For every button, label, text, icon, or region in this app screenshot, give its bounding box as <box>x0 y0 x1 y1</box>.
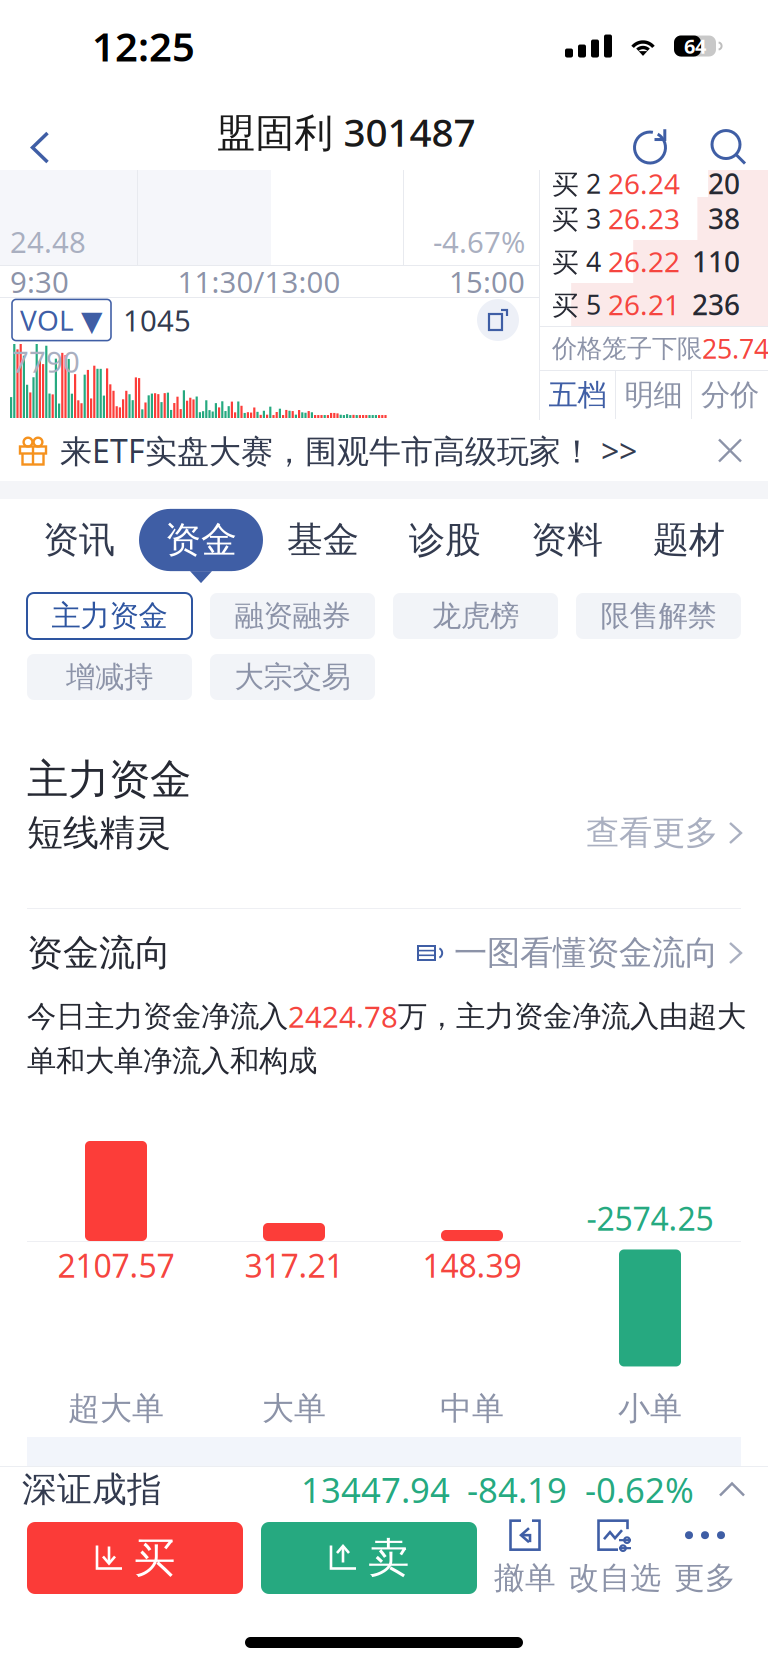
staticText: 26.24 <box>608 165 680 202</box>
staticText: 卖 <box>368 1533 409 1583</box>
staticText: 主力资金 <box>27 754 191 805</box>
staticText: -4.67% <box>433 222 525 261</box>
staticText: -0.62% <box>585 1466 694 1512</box>
staticText: 分价 <box>701 377 759 413</box>
button[interactable]: 限售解禁 <box>576 593 741 639</box>
staticText: 24.48 <box>10 222 86 261</box>
staticText: 撤单 <box>494 1559 556 1597</box>
staticText: 7790 <box>12 342 80 381</box>
staticText: 26.21 <box>608 286 680 323</box>
staticText: 深证成指 <box>22 1468 162 1511</box>
button[interactable]: 题材 <box>628 509 750 583</box>
staticText: 11:30/13:00 <box>177 262 340 301</box>
staticText: 净流入(万) <box>171 1462 319 1505</box>
staticText: 一图看懂资金流向 <box>454 932 718 973</box>
button[interactable]: 增减持 <box>27 654 192 700</box>
staticText: 64 <box>684 33 706 59</box>
button[interactable]: 资金流向 <box>0 909 768 997</box>
staticText: 25.74 <box>702 331 768 366</box>
staticText: 13447.94 <box>301 1466 450 1512</box>
button[interactable]: 大宗交易 <box>210 654 375 700</box>
staticText: 317.21 <box>244 1244 343 1286</box>
button[interactable]: Back <box>0 108 80 186</box>
staticText: 买 <box>134 1533 175 1583</box>
button[interactable]: 主力资金 <box>27 593 192 639</box>
button[interactable]: 资料 <box>506 509 628 583</box>
staticText: 超大单 <box>68 1389 164 1428</box>
staticText: 2107.57 <box>57 1244 174 1286</box>
staticText: 26.27 +0.59 +2.30% <box>205 162 486 203</box>
button[interactable]: 短线精灵 <box>0 805 768 861</box>
staticText: 中单 <box>440 1389 504 1428</box>
staticText: 资料 <box>531 518 603 562</box>
staticText: 110 <box>692 243 740 280</box>
staticText: 26.22 <box>608 243 680 280</box>
staticText: 26.23 <box>608 200 680 237</box>
staticText: 20 <box>708 165 740 202</box>
staticText: 大宗交易 <box>234 659 350 695</box>
staticText: 主力资金 <box>51 598 167 634</box>
staticText: 限售解禁 <box>600 598 716 634</box>
button[interactable]: 诊股 <box>384 509 506 583</box>
staticText: 价格笼子下限 <box>552 333 702 364</box>
staticText: 短线精灵 <box>27 811 171 855</box>
staticText: 大单 <box>262 1389 326 1428</box>
staticText: 基金 <box>287 518 359 562</box>
button[interactable]: 分价 <box>692 371 768 419</box>
staticText: 2424.78 <box>288 997 398 1036</box>
button[interactable]: 资讯 <box>18 509 140 583</box>
button[interactable]: Search <box>690 108 768 186</box>
staticText: 增减持 <box>66 659 153 695</box>
button[interactable]: 撤单 <box>480 1516 570 1600</box>
staticText: 改自选 <box>568 1559 661 1597</box>
staticText: 小单 <box>618 1389 682 1428</box>
staticText: 五档 <box>548 377 606 413</box>
staticText: 资金流向 <box>27 931 171 975</box>
staticText: 万，主力资金净流入由超大 <box>398 998 746 1034</box>
staticText: 龙虎榜 <box>432 598 519 634</box>
button[interactable]: 资金 <box>140 509 262 583</box>
button[interactable]: 五档 <box>540 371 615 419</box>
staticText: 盟固利 301487 <box>216 106 475 157</box>
staticText: 今日主力资金净流入 <box>27 998 288 1034</box>
staticText: 买 5 <box>552 287 601 322</box>
button[interactable]: 明细 <box>616 371 691 419</box>
staticText: 236 <box>692 286 740 323</box>
staticText: -84.19 <box>467 1466 567 1512</box>
button[interactable]: Refresh <box>612 108 690 186</box>
button[interactable]: 更多 <box>660 1516 750 1600</box>
staticText: 流出(万) <box>474 1462 590 1505</box>
staticText: 明细 <box>624 377 682 413</box>
staticText: 题材 <box>653 518 725 562</box>
staticText: 148.39 <box>422 1244 521 1286</box>
button[interactable]: 基金 <box>262 509 384 583</box>
button[interactable]: 龙虎榜 <box>393 593 558 639</box>
staticText: 12:25 <box>92 19 195 72</box>
staticText: -2574.25 <box>586 1197 713 1239</box>
staticText: 查看更多 <box>586 812 718 853</box>
staticText: 1045 <box>123 300 191 339</box>
staticText: 流入(万) <box>331 1462 447 1505</box>
button[interactable]: 融资融券 <box>210 593 375 639</box>
staticText: 来ETF实盘大赛，围观牛市高级玩家！ >> <box>60 429 637 472</box>
staticText: 买 2 <box>552 166 601 201</box>
button[interactable]: 深证成指 <box>0 1467 768 1512</box>
staticText: 买 3 <box>552 201 601 236</box>
button[interactable]: 来ETF实盘大赛，围观牛市高级玩家！ >> <box>0 420 768 481</box>
staticText: 15:00 <box>449 262 525 301</box>
staticText: 单和大单净流入和构成 <box>27 1043 317 1079</box>
staticText: 资金 <box>165 518 237 562</box>
staticText: 38 <box>708 200 740 237</box>
button[interactable]: Fullscreen chart <box>477 299 519 341</box>
button[interactable]: 卖 <box>261 1522 477 1594</box>
button[interactable]: 改自选 <box>570 1516 660 1600</box>
staticText: 诊股 <box>409 518 481 562</box>
staticText: 买 4 <box>552 244 601 279</box>
staticText: VOL ▼ <box>20 301 103 339</box>
staticText: 更多 <box>674 1559 736 1597</box>
staticText: 9:30 <box>10 262 69 301</box>
staticText: 资讯 <box>43 518 115 562</box>
staticText: 成交占比 <box>608 1464 736 1503</box>
button[interactable]: 买 <box>27 1522 243 1594</box>
staticText: 融资融券 <box>234 598 350 634</box>
